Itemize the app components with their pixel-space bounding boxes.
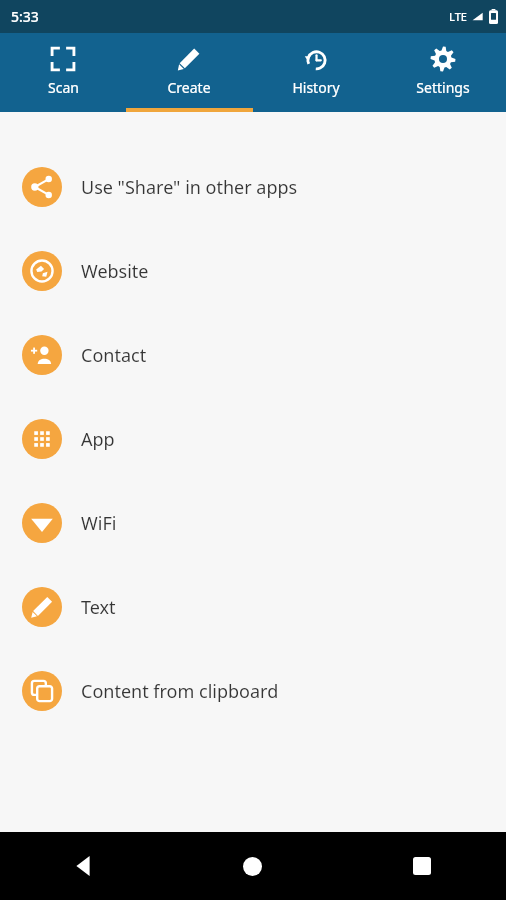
staticText: Settings	[416, 78, 470, 97]
button[interactable]: WiFi	[0, 481, 506, 565]
button[interactable]: Contact	[0, 313, 506, 397]
button[interactable]: Settings	[379, 33, 506, 112]
button[interactable]: Create	[126, 33, 252, 112]
staticText: 5:33	[11, 7, 39, 26]
button[interactable]: Recent apps	[337, 832, 506, 900]
staticText: Content from clipboard	[81, 679, 279, 704]
button[interactable]: Scan	[0, 33, 126, 112]
staticText: WiFi	[81, 511, 117, 536]
button[interactable]: Website	[0, 229, 506, 313]
staticText: Website	[81, 259, 149, 284]
staticText: Use "Share" in other apps	[81, 175, 298, 200]
staticText: History	[292, 78, 340, 97]
staticText: App	[81, 427, 115, 452]
button[interactable]: Back	[0, 832, 168, 900]
button[interactable]: Home	[168, 832, 337, 900]
button[interactable]: Use "Share" in other apps	[0, 145, 506, 229]
staticText: Create	[167, 78, 211, 97]
button[interactable]: History	[252, 33, 379, 112]
staticText: Contact	[81, 343, 147, 368]
button[interactable]: Content from clipboard	[0, 649, 506, 733]
staticText: Scan	[48, 78, 79, 97]
staticText: Text	[81, 595, 116, 620]
staticText: LTE	[449, 9, 467, 24]
button[interactable]: Text	[0, 565, 506, 649]
button[interactable]: App	[0, 397, 506, 481]
